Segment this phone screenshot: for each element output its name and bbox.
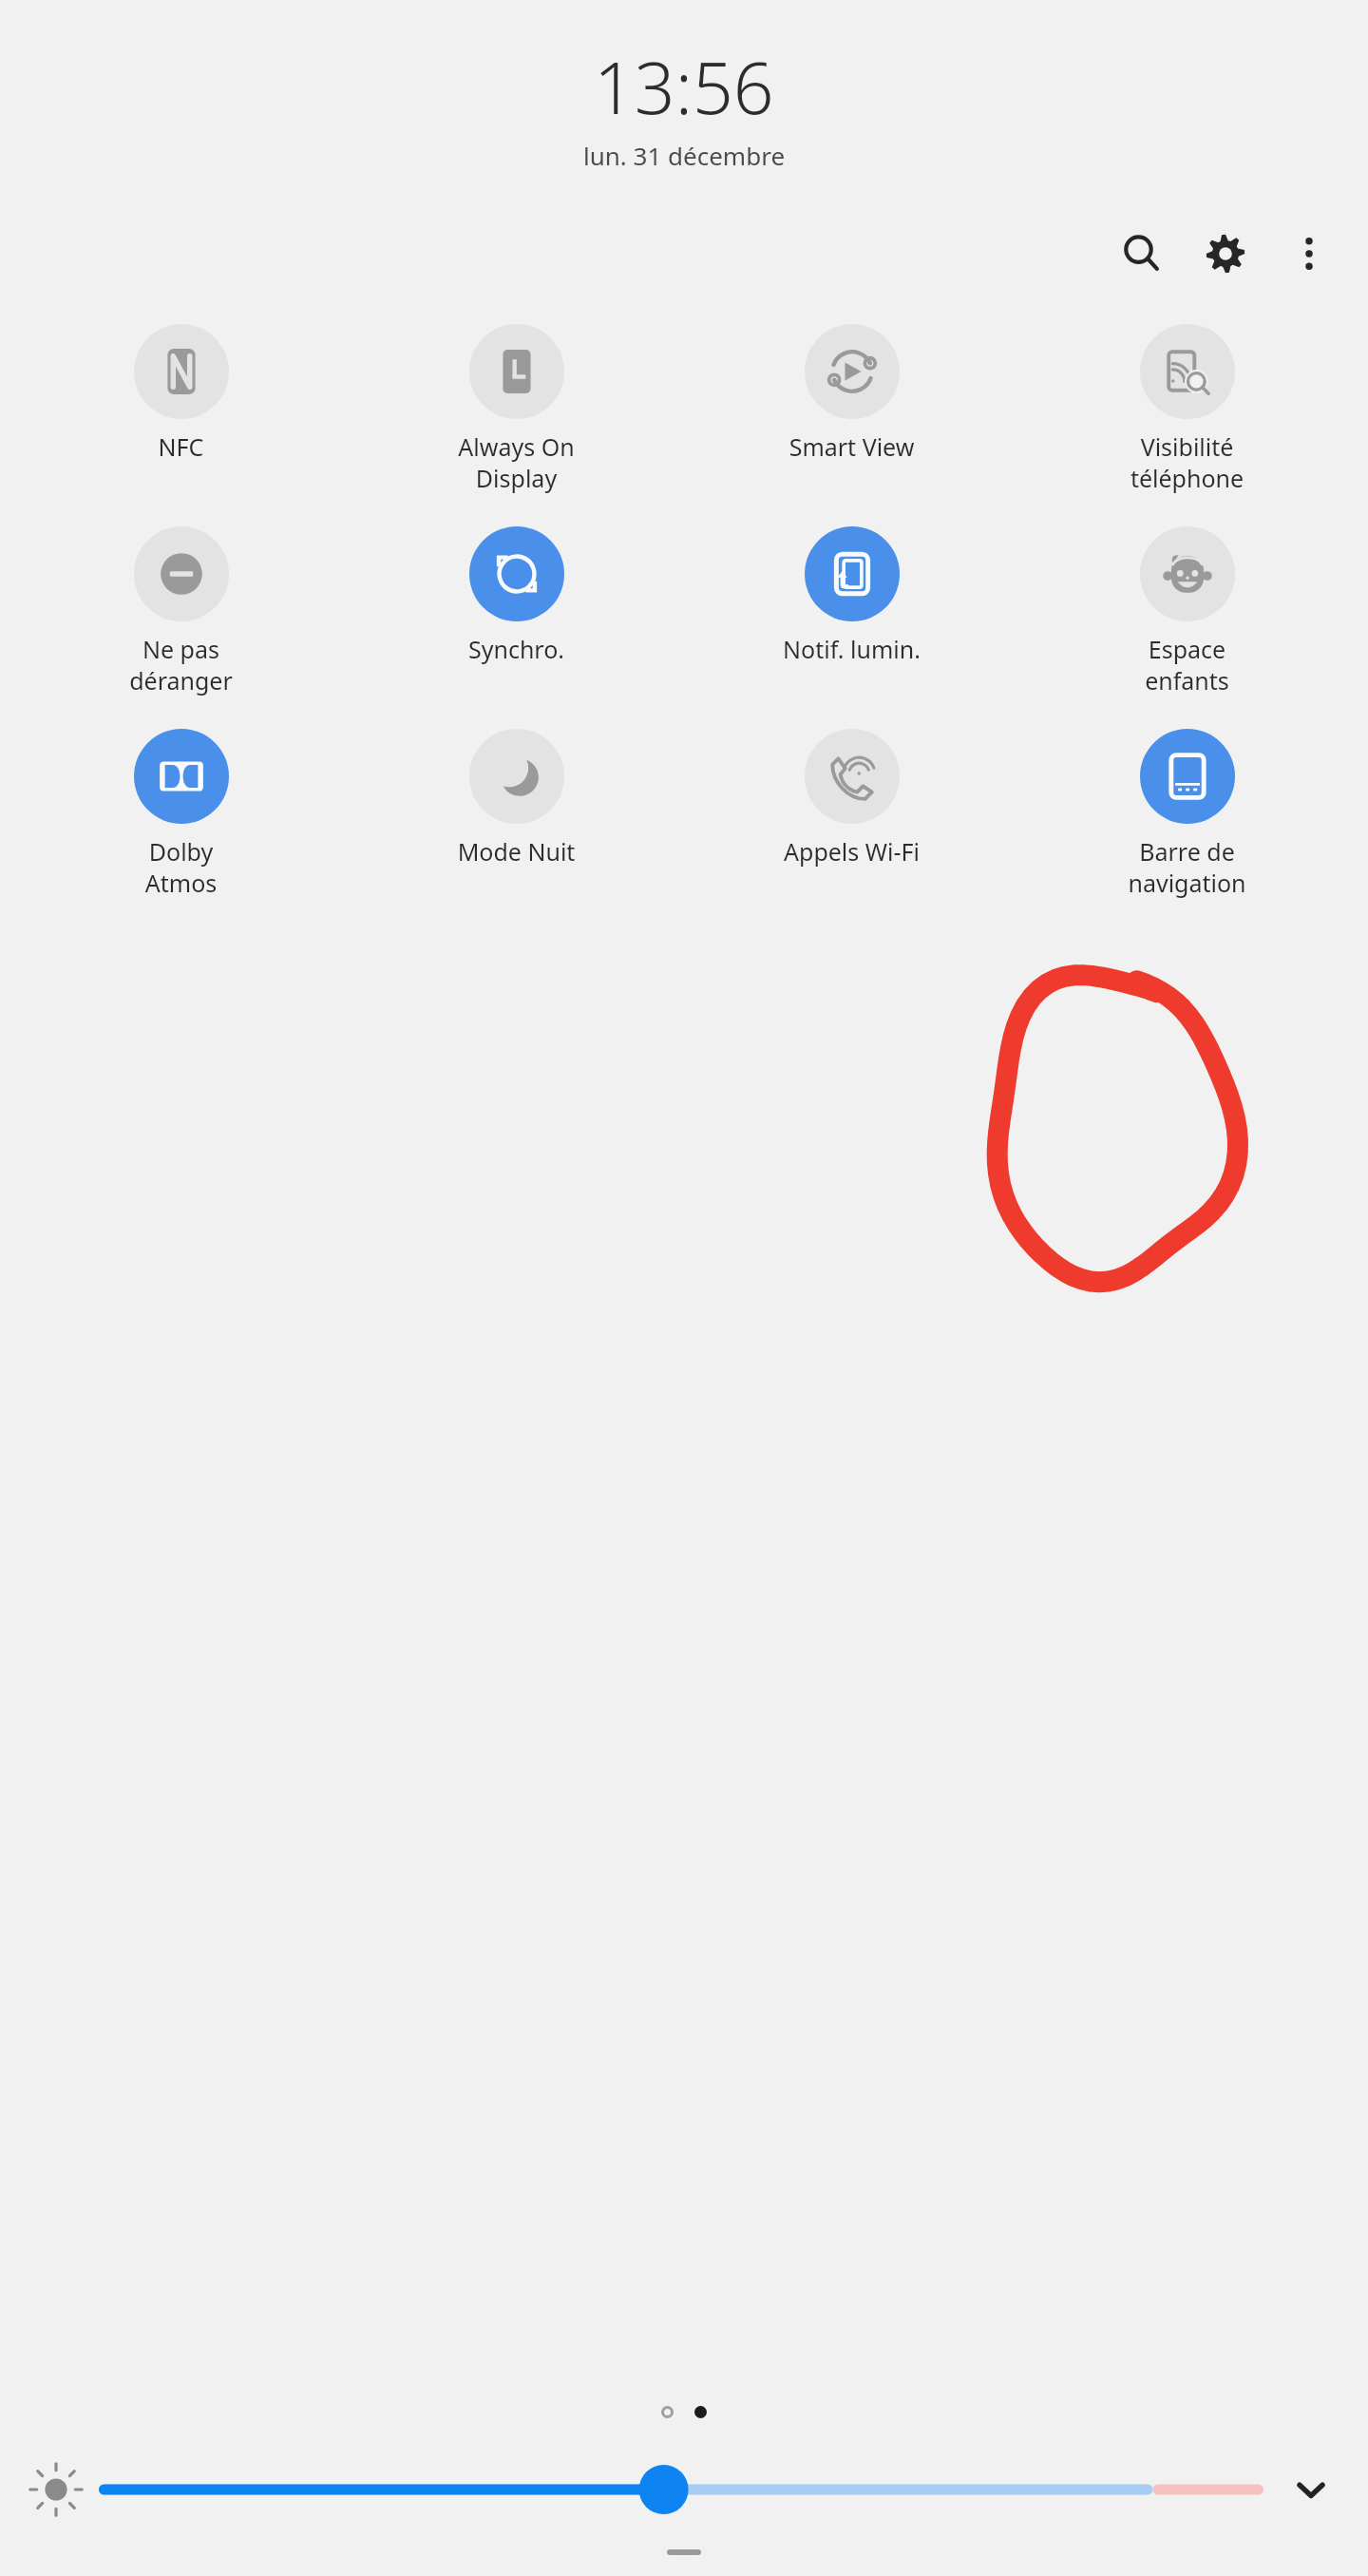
staticText: Dolby Atmos	[13, 835, 349, 899]
staticText: Espace enfants	[1019, 633, 1355, 696]
button[interactable]: NFC	[13, 324, 349, 463]
staticText: lun. 31 décembre	[583, 139, 786, 172]
staticText: Synchro.	[349, 633, 684, 665]
button[interactable]: Smart View	[684, 324, 1019, 463]
button[interactable]: Search	[1106, 218, 1178, 290]
button[interactable]: Ne pas déranger	[13, 526, 349, 696]
button[interactable]: Dolby Atmos	[13, 729, 349, 899]
button[interactable]: Barre de navigation	[1019, 729, 1355, 899]
staticText: NFC	[13, 430, 349, 463]
button[interactable]	[99, 2463, 1263, 2516]
button[interactable]: Notif. lumin.	[684, 526, 1019, 665]
button[interactable]: Always On Display	[349, 324, 684, 494]
staticText: Notif. lumin.	[684, 633, 1019, 665]
staticText: Always On Display	[349, 430, 684, 494]
staticText: 13:56	[594, 38, 774, 135]
staticText: Barre de navigation	[1019, 835, 1355, 899]
button[interactable]: Synchro.	[349, 526, 684, 665]
staticText: Mode Nuit	[349, 835, 684, 868]
staticText: Visibilité téléphone	[1019, 430, 1355, 494]
button[interactable]: Settings	[1189, 218, 1262, 290]
button[interactable]: Espace enfants	[1019, 526, 1355, 696]
button[interactable]: More options	[1273, 218, 1345, 290]
staticText: Smart View	[684, 430, 1019, 463]
button[interactable]: Expand	[1282, 2461, 1339, 2518]
staticText: Appels Wi-Fi	[684, 835, 1019, 868]
staticText: Ne pas déranger	[13, 633, 349, 696]
button[interactable]: Appels Wi-Fi	[684, 729, 1019, 868]
button[interactable]: Mode Nuit	[349, 729, 684, 868]
button[interactable]: Visibilité téléphone	[1019, 324, 1355, 494]
